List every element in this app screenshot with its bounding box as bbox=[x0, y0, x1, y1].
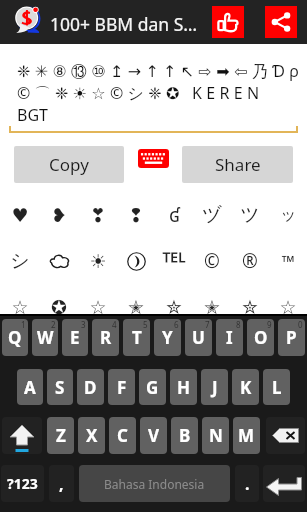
button[interactable]: D bbox=[77, 369, 104, 405]
staticText: ?123 bbox=[7, 474, 38, 493]
staticText: 7 bbox=[205, 319, 210, 330]
button[interactable]: ?123 bbox=[1, 465, 44, 502]
button[interactable]: Q bbox=[2, 319, 28, 356]
staticText: . bbox=[245, 473, 250, 495]
staticText: ©⌒❈☀☆©シ❈✪ KEREN bbox=[17, 82, 264, 104]
button[interactable]: ✭ bbox=[117, 284, 155, 330]
staticText: 5 bbox=[143, 319, 148, 330]
staticText: A bbox=[24, 376, 36, 399]
button[interactable]: ® bbox=[231, 238, 269, 284]
staticText: ☆ bbox=[279, 296, 297, 318]
button[interactable]: Bahasa Indonesia bbox=[79, 465, 230, 502]
button[interactable]: © bbox=[193, 238, 231, 284]
button[interactable]: H bbox=[170, 369, 197, 405]
button[interactable]: Like bbox=[212, 6, 244, 38]
button[interactable]: Keyboard bbox=[138, 149, 169, 168]
staticText: T bbox=[132, 326, 142, 349]
button[interactable]: Share bbox=[265, 6, 297, 38]
button[interactable]: A bbox=[17, 369, 43, 405]
staticText: Y bbox=[162, 326, 173, 349]
button[interactable]: ✭ bbox=[193, 284, 231, 330]
staticText: 1 bbox=[21, 319, 26, 330]
button[interactable]: ☆ bbox=[0, 284, 39, 330]
button[interactable]: Share bbox=[182, 146, 293, 183]
staticText: ❈✳⑧⑬⑩↥→↑↑↖⇨➡⇦乃Ɗρ bbox=[17, 60, 304, 82]
staticText: P bbox=[286, 326, 297, 349]
button[interactable]: R bbox=[92, 319, 119, 356]
staticText: W bbox=[37, 326, 54, 349]
button[interactable]: X bbox=[78, 417, 105, 454]
button[interactable]: , bbox=[49, 465, 74, 502]
button[interactable] bbox=[117, 238, 155, 284]
button[interactable]: O bbox=[247, 319, 274, 356]
button[interactable]: Backspace bbox=[266, 417, 305, 454]
button[interactable]: B bbox=[171, 417, 198, 454]
button[interactable]: ❣ bbox=[78, 192, 117, 238]
staticText: U bbox=[192, 326, 205, 349]
button[interactable]: L bbox=[263, 369, 290, 405]
staticText: © bbox=[204, 248, 220, 274]
staticText: ☀ bbox=[89, 250, 107, 272]
button[interactable]: Enter bbox=[263, 465, 305, 502]
button[interactable]: Y bbox=[154, 319, 181, 356]
button[interactable]: Shift bbox=[2, 417, 42, 454]
button[interactable]: ❥ bbox=[39, 192, 78, 238]
button[interactable] bbox=[39, 238, 78, 284]
staticText: ✮ bbox=[242, 296, 258, 318]
button[interactable]: T bbox=[123, 319, 150, 356]
staticText: Copy bbox=[49, 153, 89, 176]
button[interactable]: ☆ bbox=[269, 284, 307, 330]
button[interactable]: ツ bbox=[231, 192, 269, 238]
staticText: X bbox=[86, 424, 98, 447]
button[interactable]: K bbox=[232, 369, 259, 405]
staticText: J bbox=[212, 376, 218, 399]
button[interactable]: V bbox=[140, 417, 167, 454]
button[interactable]: ヅ bbox=[193, 192, 231, 238]
button[interactable]: ℡ bbox=[155, 238, 193, 284]
button[interactable]: ✪ bbox=[39, 284, 78, 330]
button[interactable]: ッ bbox=[269, 192, 307, 238]
staticText: ✭ bbox=[128, 296, 144, 318]
staticText: 6 bbox=[174, 319, 179, 330]
staticText: ʛ bbox=[169, 202, 180, 228]
button[interactable]: ™ bbox=[269, 238, 307, 284]
staticText: ® bbox=[242, 248, 258, 274]
staticText: C bbox=[117, 424, 128, 447]
button[interactable]: W bbox=[32, 319, 58, 356]
button[interactable]: U bbox=[185, 319, 212, 356]
staticText: K bbox=[240, 376, 252, 399]
staticText: O bbox=[254, 326, 268, 349]
button[interactable]: ☆ bbox=[78, 284, 117, 330]
button[interactable]: ❢ bbox=[117, 192, 155, 238]
button[interactable]: E bbox=[62, 319, 88, 356]
staticText: , bbox=[59, 473, 64, 495]
button[interactable]: S bbox=[47, 369, 73, 405]
staticText: D bbox=[84, 376, 97, 399]
staticText: ✮ bbox=[166, 296, 182, 318]
button[interactable]: ♥ bbox=[0, 192, 39, 238]
staticText: ツ bbox=[240, 203, 260, 227]
staticText: ☆ bbox=[89, 296, 107, 318]
button[interactable]: Z bbox=[47, 417, 74, 454]
button[interactable]: C bbox=[109, 417, 136, 454]
staticText: 2 bbox=[51, 319, 56, 330]
button[interactable]: G bbox=[139, 369, 166, 405]
button[interactable]: N bbox=[202, 417, 229, 454]
staticText: S bbox=[55, 376, 65, 399]
button[interactable]: P bbox=[278, 319, 305, 356]
button[interactable]: シ bbox=[0, 238, 39, 284]
button[interactable]: ✮ bbox=[155, 284, 193, 330]
button[interactable]: Copy bbox=[14, 146, 124, 183]
staticText: ✭ bbox=[204, 296, 220, 318]
button[interactable]: ʛ bbox=[155, 192, 193, 238]
button[interactable]: ☀ bbox=[78, 238, 117, 284]
button[interactable]: F bbox=[108, 369, 135, 405]
staticText: Z bbox=[56, 424, 66, 447]
staticText: ♥ bbox=[11, 204, 29, 226]
button[interactable]: M bbox=[233, 417, 260, 454]
button[interactable]: J bbox=[201, 369, 228, 405]
button[interactable]: ✮ bbox=[231, 284, 269, 330]
button[interactable]: I bbox=[216, 319, 243, 356]
staticText: ℡ bbox=[162, 242, 186, 281]
button[interactable]: . bbox=[235, 465, 259, 502]
